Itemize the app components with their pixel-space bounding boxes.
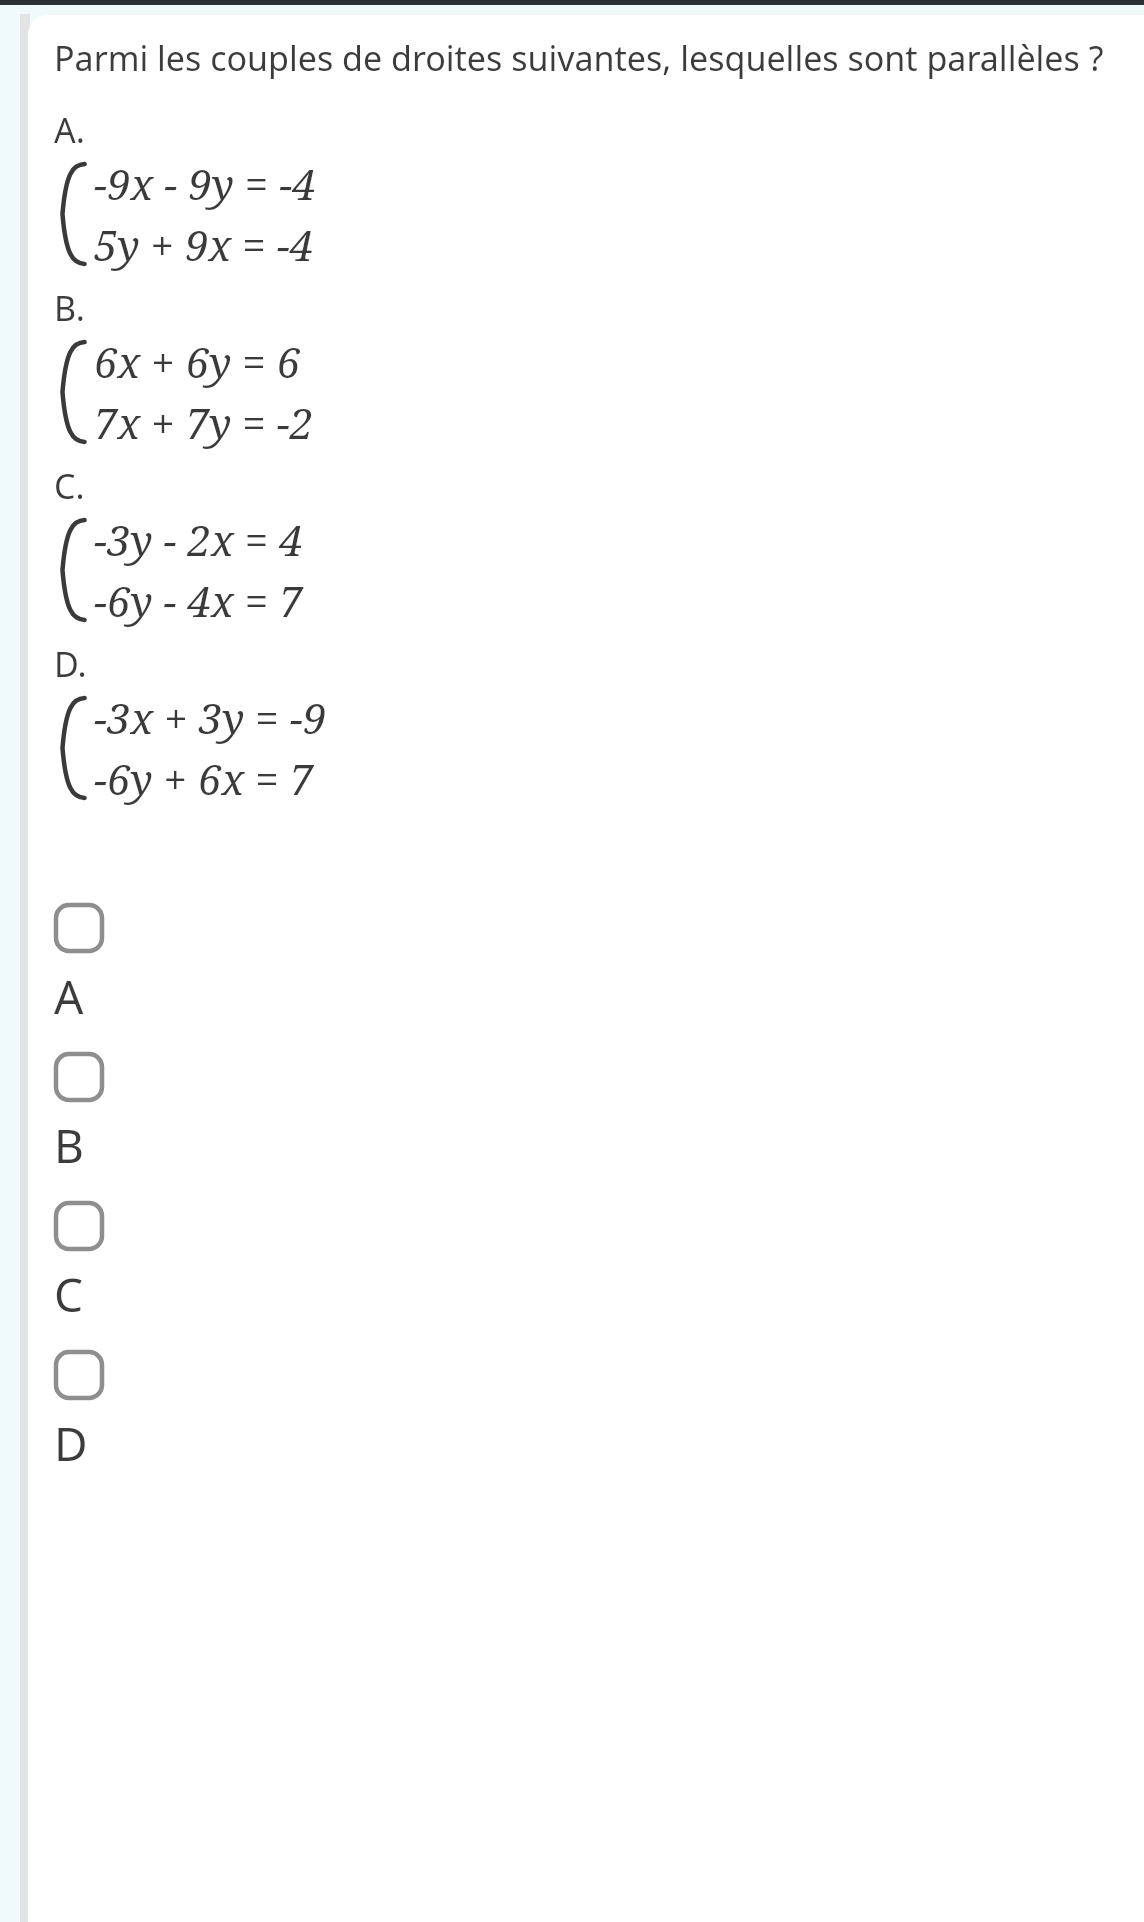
button[interactable]: C (28, 1189, 1144, 1338)
staticText: B. (54, 285, 85, 331)
staticText: A. (54, 107, 85, 153)
staticText: B (54, 1114, 84, 1177)
staticText: −6y + 6x = 7 (94, 750, 314, 807)
staticText: 7x + 7y = −2 (94, 394, 314, 451)
staticText: A (54, 965, 84, 1028)
staticText: D. (54, 641, 87, 687)
staticText: C (54, 1263, 84, 1326)
staticText: −3y − 2x = 4 (94, 511, 303, 568)
button[interactable]: A (28, 891, 1144, 1040)
staticText: −3x + 3y = −9 (94, 689, 327, 746)
staticText: Parmi les couples de droites suivantes, … (54, 35, 1144, 81)
button[interactable]: B (28, 1040, 1144, 1189)
staticText: 5y + 9x = −4 (94, 216, 314, 273)
staticText: −6y − 4x = 7 (94, 572, 303, 629)
staticText: 6x + 6y = 6 (94, 333, 301, 390)
staticText: −9x − 9y = −4 (94, 155, 316, 212)
button[interactable]: D (28, 1338, 1144, 1487)
staticText: C. (54, 463, 85, 509)
staticText: D (54, 1412, 88, 1475)
